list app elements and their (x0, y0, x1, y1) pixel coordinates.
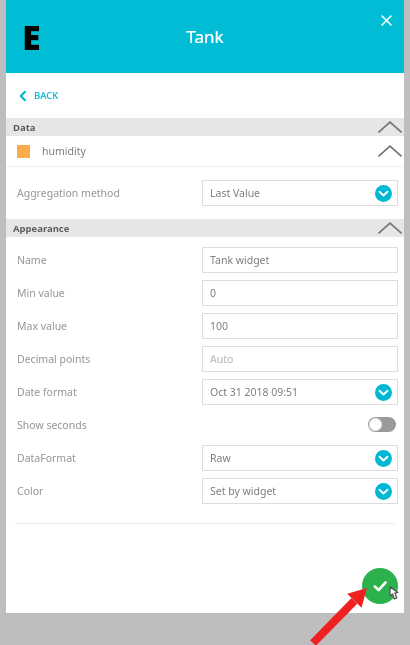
staticText: Tank (186, 25, 224, 48)
button[interactable]: Show seconds toggle (368, 417, 396, 432)
button[interactable]: Date format (6, 375, 404, 408)
staticText: Last Value (210, 186, 261, 200)
button[interactable]: BACK (6, 73, 404, 118)
staticText: BACK (34, 89, 59, 102)
staticText: Name (17, 253, 47, 267)
staticText: Auto (210, 352, 234, 366)
staticText: Color (17, 484, 44, 498)
other: Open dropdown (375, 384, 392, 401)
button[interactable]: Decimal points (6, 342, 404, 375)
other: Open dropdown (375, 185, 392, 202)
other: Open dropdown (375, 483, 392, 500)
staticText: Tank widget (210, 253, 270, 267)
staticText: Raw (210, 451, 231, 465)
button[interactable]: Aggregation method (6, 178, 404, 208)
staticText: Date format (17, 385, 77, 399)
staticText: Appearance (13, 222, 70, 235)
button[interactable]: Color (6, 474, 404, 507)
button[interactable]: humidity (6, 136, 404, 166)
button[interactable]: DataFormat (6, 441, 404, 474)
button[interactable]: Min value (6, 276, 404, 309)
staticText: Min value (17, 286, 65, 300)
button[interactable]: Show seconds (6, 408, 404, 441)
staticText: Show seconds (17, 418, 87, 432)
staticText: Data (13, 121, 36, 134)
staticText: Aggregation method (17, 186, 120, 200)
staticText: DataFormat (17, 451, 76, 465)
staticText: humidity (42, 144, 86, 158)
button[interactable]: Data (6, 118, 404, 136)
staticText: E (22, 14, 41, 60)
staticText: Set by widget (210, 484, 277, 498)
other: Open dropdown (375, 450, 392, 467)
button[interactable]: Name (6, 243, 404, 276)
button[interactable]: Max value (6, 309, 404, 342)
staticText: Oct 31 2018 09:51 (210, 385, 299, 399)
staticText: 0 (210, 286, 217, 300)
button[interactable]: Confirm (362, 568, 398, 604)
staticText: Max value (17, 319, 68, 333)
staticText: Decimal points (17, 352, 91, 366)
button[interactable]: Close (376, 10, 396, 30)
button[interactable]: Appearance (6, 219, 404, 237)
staticText: 100 (210, 319, 229, 333)
